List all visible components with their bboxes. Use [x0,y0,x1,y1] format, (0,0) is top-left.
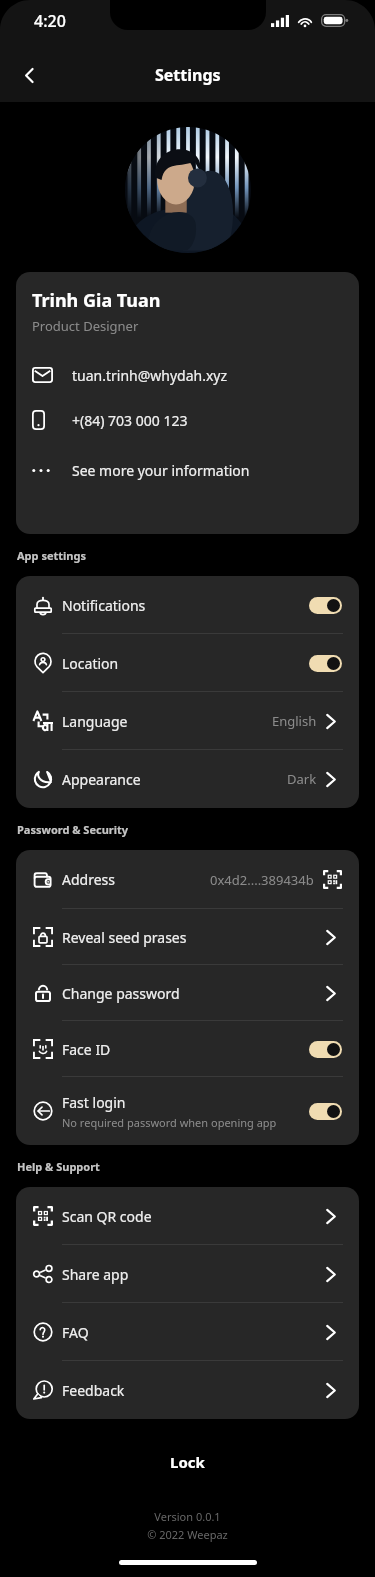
staticText: Trinh Gia Tuan [32,288,161,313]
staticText: Share app [62,1265,129,1284]
button[interactable]: Appearance [16,750,359,808]
button[interactable]: Scan QR code [16,1187,359,1245]
staticText: Dark [287,770,317,788]
button[interactable]: tuan.trinh@whydah.xyz [32,364,343,386]
staticText: See more your information [72,461,250,480]
staticText: Help & Support [17,1159,375,1174]
staticText: Appearance [62,770,141,789]
button[interactable]: Face ID [16,1021,359,1077]
staticText: Notifications [62,596,146,615]
staticText: tuan.trinh@whydah.xyz [72,366,228,385]
button[interactable]: Location [16,634,359,692]
staticText: Settings [155,64,221,86]
staticText: FAQ [62,1323,89,1342]
button[interactable]: Fast login [16,1077,359,1145]
button[interactable]: Feedback [16,1361,359,1419]
button[interactable]: Language [16,692,359,750]
staticText: Location [62,654,119,673]
button[interactable]: Back [10,56,48,94]
button[interactable]: Address [16,850,359,909]
staticText: Lock [170,1452,205,1472]
staticText: Address [62,870,115,889]
button[interactable]: FAQ [16,1303,359,1361]
button[interactable]: See more your information [32,459,343,481]
staticText: Password & Security [17,822,375,837]
staticText: No required password when opening app [62,1115,277,1130]
staticText: +(84) 703 000 123 [72,411,188,430]
staticText: App settings [17,548,375,563]
staticText: 0x4d2....389434b [210,871,314,889]
staticText: Product Designer [32,317,139,335]
staticText: Version 0.0.1 [0,1509,375,1524]
staticText: Reveal seed prases [62,928,187,947]
staticText: English [272,712,317,730]
button[interactable]: Share app [16,1245,359,1303]
button[interactable]: Change password [16,965,359,1021]
staticText: Fast login [62,1093,126,1112]
button[interactable]: Reveal seed prases [16,909,359,965]
staticText: Change password [62,984,180,1003]
staticText: Language [62,712,128,731]
staticText: Face ID [62,1040,111,1059]
staticText: Feedback [62,1381,125,1400]
button[interactable]: Notifications [16,576,359,634]
staticText: 4:20 [34,10,66,32]
staticText: © 2022 Weepaz [0,1527,375,1542]
staticText: Scan QR code [62,1207,152,1226]
button[interactable]: +(84) 703 000 123 [32,409,343,431]
button[interactable]: Lock [0,1451,375,1473]
